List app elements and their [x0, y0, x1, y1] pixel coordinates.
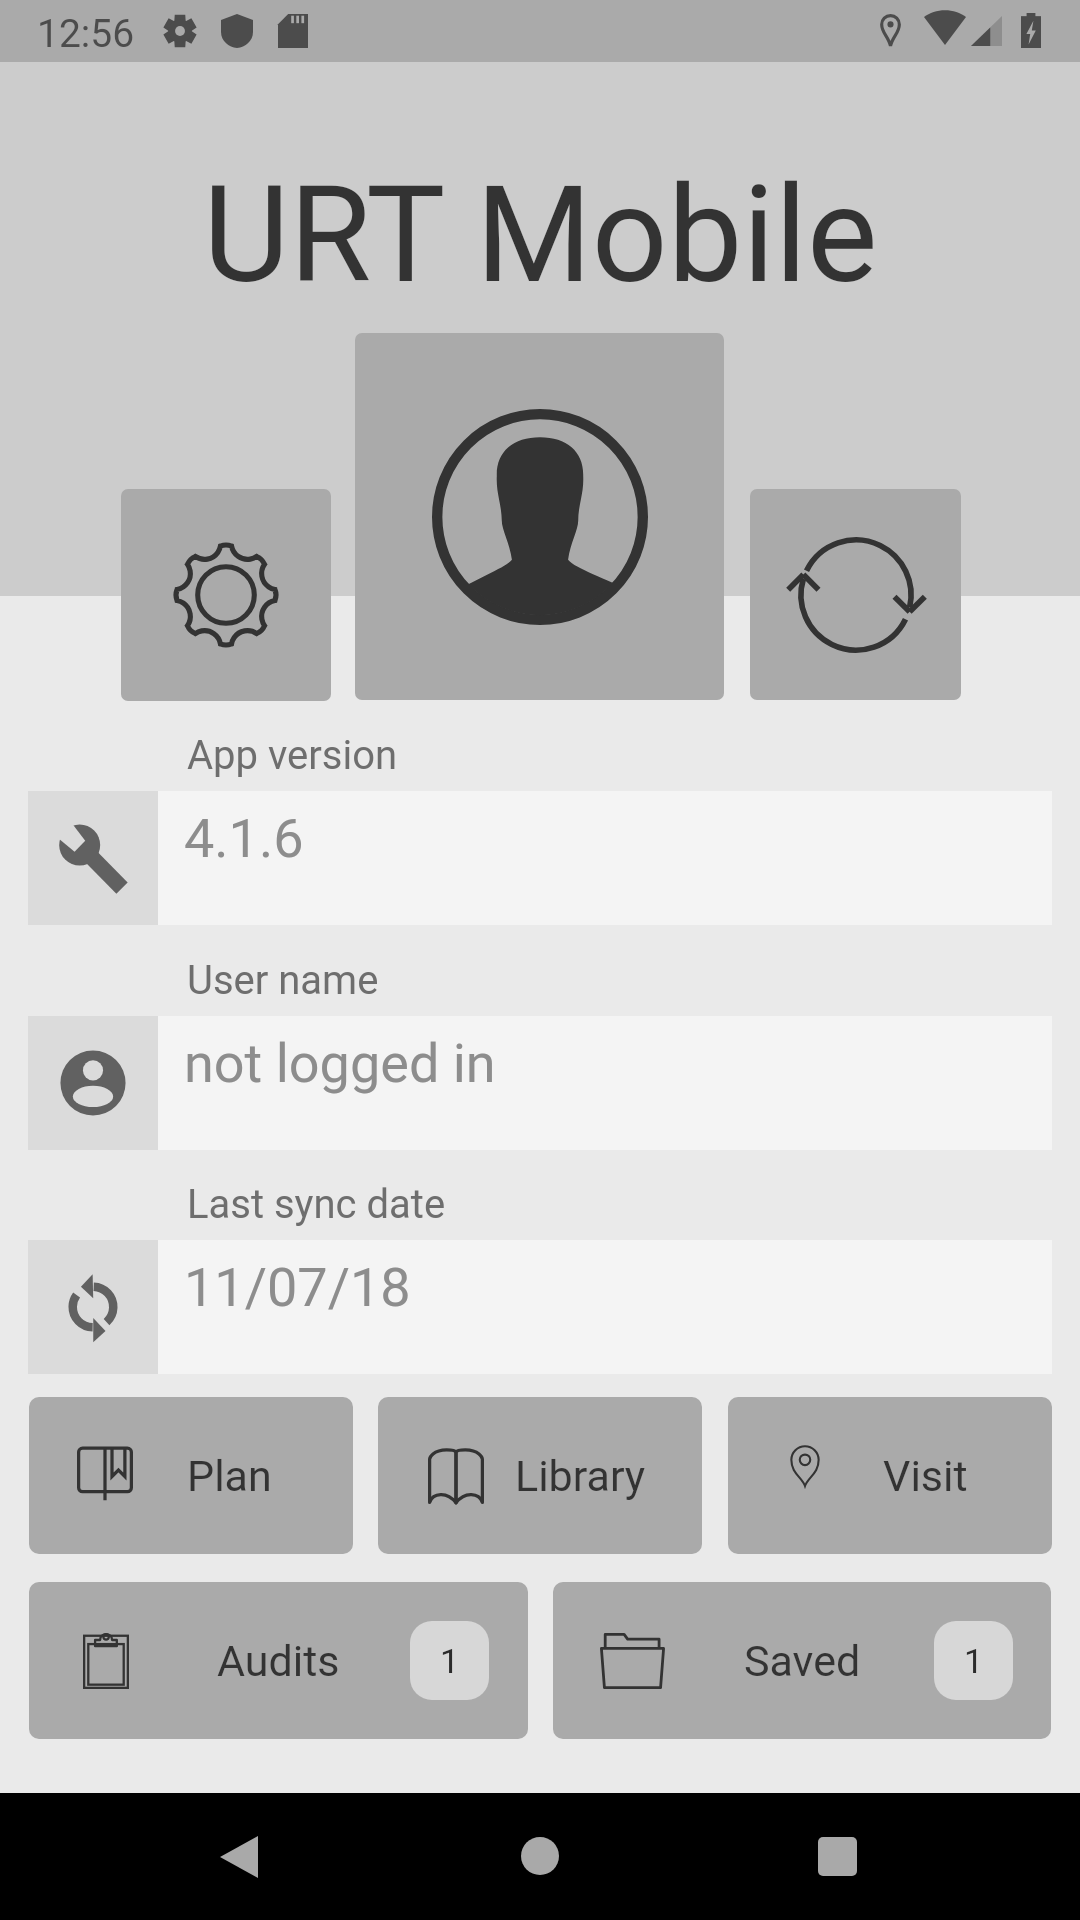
button[interactable]: Audits — [29, 1582, 528, 1739]
button[interactable]: Sync — [750, 489, 961, 700]
staticText: 1 — [964, 1641, 984, 1681]
button[interactable]: Back — [180, 1796, 300, 1916]
staticText: 1 — [440, 1641, 460, 1681]
button[interactable]: Recents — [778, 1796, 898, 1916]
button[interactable]: Saved — [553, 1582, 1051, 1739]
staticText: User name — [187, 957, 379, 1004]
staticText: 4.1.6 — [184, 807, 304, 870]
staticText: Library — [515, 1451, 646, 1501]
staticText: not logged in — [184, 1032, 496, 1095]
staticText: 11/07/18 — [184, 1256, 411, 1319]
button[interactable]: Plan — [29, 1397, 353, 1554]
staticText: Visit — [883, 1451, 968, 1501]
staticText: 12:56 — [37, 11, 135, 57]
staticText: Audits — [217, 1636, 340, 1686]
staticText: URT Mobile — [203, 158, 878, 314]
button[interactable]: Home — [480, 1796, 600, 1916]
button[interactable]: Profile — [355, 333, 724, 700]
staticText: Plan — [187, 1451, 272, 1501]
staticText: Saved — [744, 1636, 861, 1686]
staticText: Last sync date — [187, 1181, 446, 1228]
button[interactable]: Settings — [121, 489, 331, 701]
button[interactable]: Library — [378, 1397, 702, 1554]
button[interactable]: Visit — [728, 1397, 1052, 1554]
staticText: App version — [187, 732, 398, 779]
